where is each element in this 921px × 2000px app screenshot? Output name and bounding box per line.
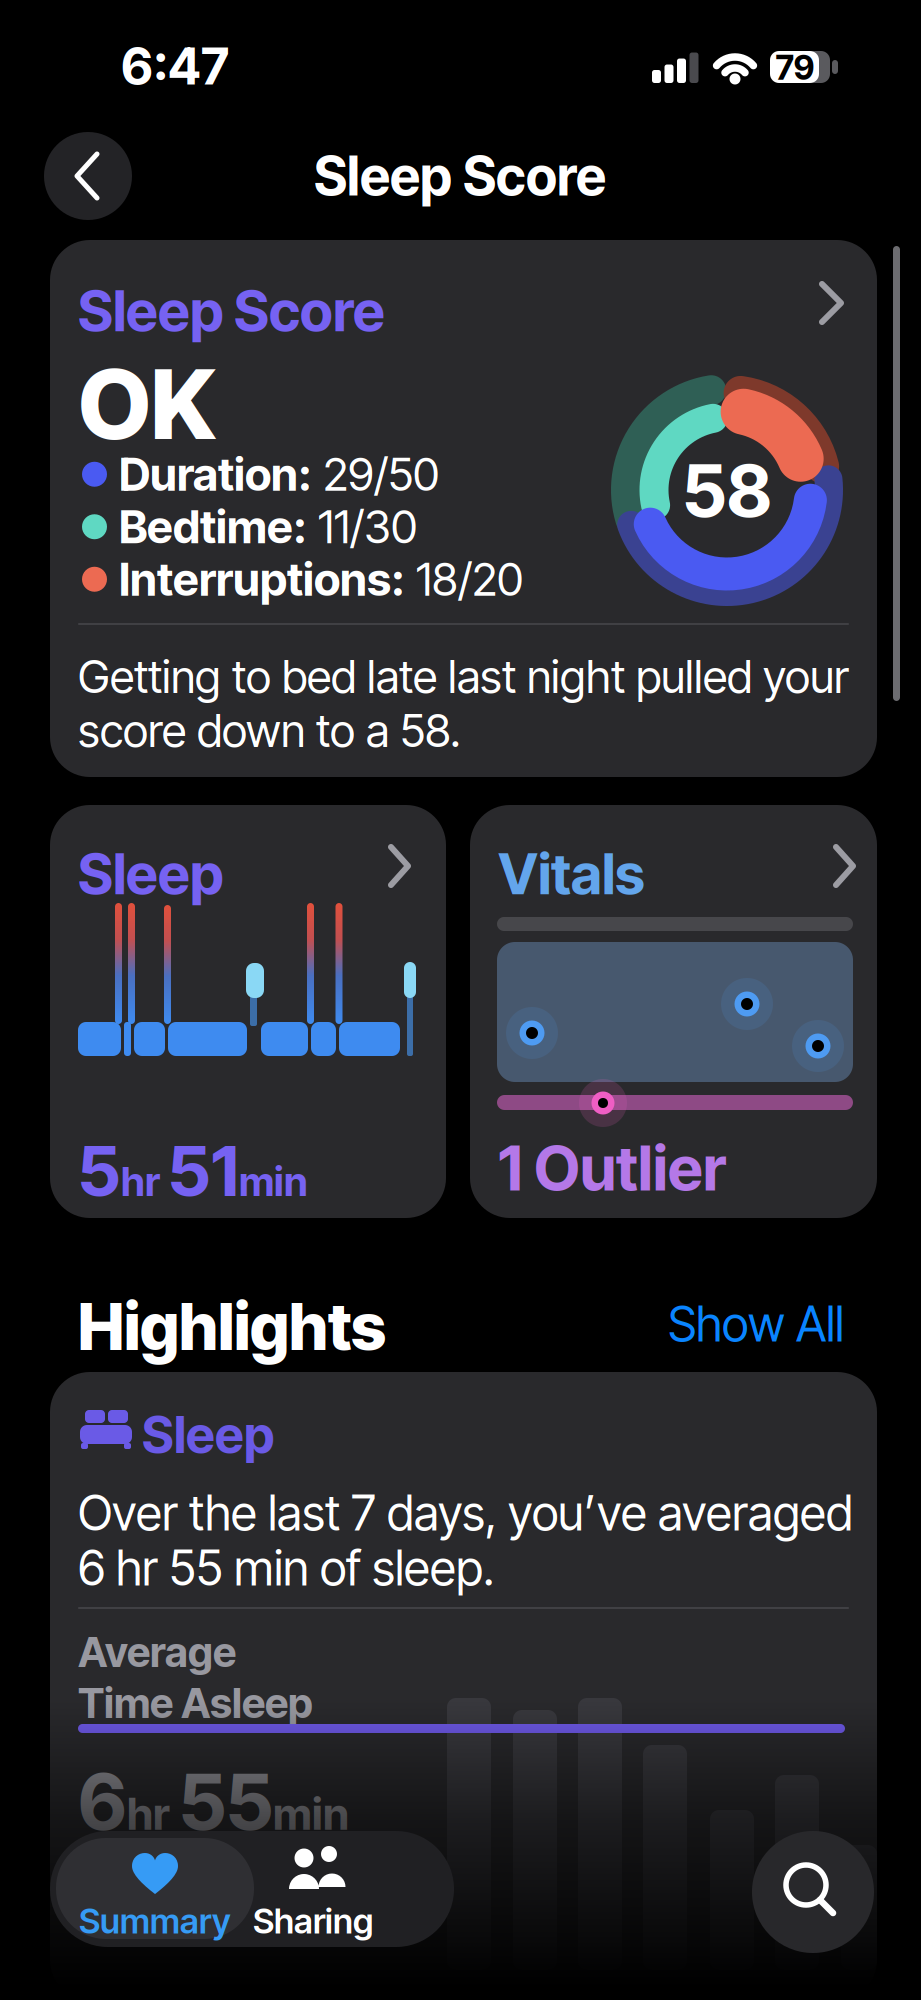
staticText: Highlights [78, 1288, 386, 1365]
staticText: 6 hr 55 min of sleep. [78, 1539, 494, 1597]
staticText: 5hr 51min [78, 1130, 308, 1212]
staticText: Show All [668, 1295, 844, 1353]
staticText: Time Asleep [78, 1678, 313, 1728]
staticText: Interruptions: 18/20 [119, 552, 523, 606]
staticText: OK [78, 346, 216, 462]
staticText: Over the last 7 days, you’ve averaged [78, 1484, 853, 1542]
staticText: score down to a 58. [78, 703, 461, 758]
staticText: 1 Outlier [498, 1131, 726, 1205]
staticText: Duration: 29/50 [119, 447, 439, 501]
staticText: Summary [79, 1900, 231, 1942]
staticText: Sharing [253, 1900, 373, 1942]
staticText: Vitals [498, 840, 645, 908]
staticText: Sleep Score [314, 144, 606, 208]
staticText: Sleep [78, 840, 223, 908]
staticText: 6hr 55min [78, 1756, 349, 1847]
staticText: Bedtime: 11/30 [119, 500, 417, 553]
staticText: Sleep Score [78, 277, 385, 345]
staticText: 6:47 [121, 35, 229, 97]
staticText: 79 [775, 47, 814, 88]
staticText: 58 [682, 447, 771, 534]
staticText: Sleep [142, 1404, 274, 1465]
staticText: Getting to bed late last night pulled yo… [78, 649, 849, 704]
staticText: Average [78, 1627, 236, 1677]
